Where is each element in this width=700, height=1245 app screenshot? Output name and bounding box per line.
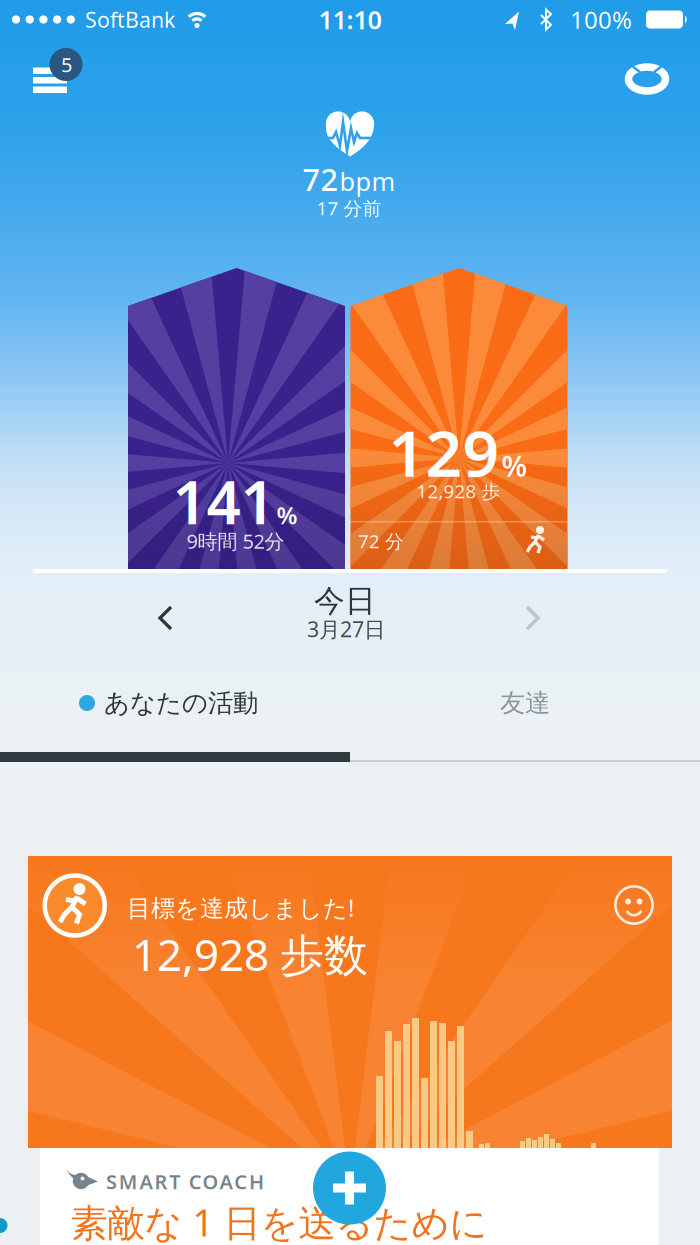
staticText: 11:10 — [318, 3, 381, 36]
staticText: 72 — [302, 159, 338, 199]
staticText: 5 — [61, 51, 72, 78]
staticText: あなたの活動 — [104, 687, 258, 718]
staticText: 3月27日 — [307, 615, 385, 643]
staticText: % — [501, 446, 527, 485]
button[interactable]: Menu — [24, 46, 84, 102]
staticText: SMART COACH — [106, 1168, 264, 1195]
staticText: 9時間 52分 — [186, 528, 284, 554]
staticText: 友達 — [500, 687, 550, 718]
staticText: 17 分前 — [316, 196, 381, 220]
staticText: 72 分 — [358, 529, 404, 553]
button[interactable]: あなたの活動 — [0, 676, 350, 730]
staticText: 141 — [172, 461, 274, 541]
staticText: 素敵な 1 日を送るために — [70, 1197, 487, 1245]
button[interactable]: Add — [312, 1151, 386, 1225]
staticText: 12,928 歩 — [416, 479, 500, 503]
button[interactable]: Previous day — [146, 600, 190, 636]
staticText: 目標を達成しました! — [127, 892, 354, 923]
staticText: bpm — [339, 164, 395, 198]
staticText: SoftBank — [85, 5, 175, 34]
staticText: 100% — [570, 4, 632, 35]
button[interactable]: Band — [619, 55, 675, 103]
staticText: 今日 — [314, 582, 376, 620]
button[interactable]: 目標を達成しました! — [28, 856, 672, 1148]
button[interactable]: Next day — [510, 600, 554, 636]
staticText: 12,928 歩数 — [132, 925, 368, 983]
staticText: 129 — [388, 409, 499, 494]
staticText: % — [276, 499, 297, 531]
button[interactable]: 友達 — [350, 676, 700, 730]
